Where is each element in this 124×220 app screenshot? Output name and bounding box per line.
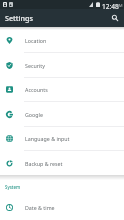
staticText: Backup & reset: [25, 160, 63, 167]
staticText: Google: [25, 111, 43, 118]
staticText: Location: [25, 37, 47, 44]
button[interactable]: Backup & reset: [0, 151, 124, 176]
staticText: 12:48: [102, 2, 119, 11]
staticText: Accounts: [25, 86, 48, 93]
button[interactable]: Google: [0, 102, 124, 127]
button[interactable]: Date & time: [0, 195, 124, 220]
staticText: AM: [116, 3, 123, 9]
button[interactable]: Accounts: [0, 77, 124, 102]
button[interactable]: Location: [0, 28, 124, 53]
staticText: Date & time: [25, 204, 55, 211]
staticText: Language & input: [25, 135, 70, 142]
staticText: Security: [25, 62, 45, 69]
staticText: System: [5, 184, 21, 190]
button[interactable]: Language & input: [0, 126, 124, 151]
button[interactable]: Search: [109, 12, 121, 24]
button[interactable]: Security: [0, 53, 124, 78]
staticText: Settings: [5, 13, 33, 23]
